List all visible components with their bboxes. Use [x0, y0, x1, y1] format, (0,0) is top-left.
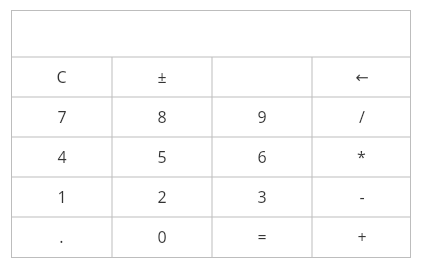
- button[interactable]: 7: [11, 97, 112, 137]
- button[interactable]: 5: [112, 137, 212, 177]
- button[interactable]: Equals: [212, 217, 312, 257]
- staticText: .: [59, 226, 64, 248]
- staticText: ←: [355, 68, 369, 87]
- staticText: +: [357, 226, 367, 248]
- staticText: 0: [157, 226, 167, 248]
- button[interactable]: 8: [112, 97, 212, 137]
- button[interactable]: 6: [212, 137, 312, 177]
- button[interactable]: Decimal point: [11, 217, 112, 257]
- button[interactable]: Plus minus: [112, 57, 212, 97]
- staticText: 1: [57, 186, 67, 208]
- button[interactable]: 4: [11, 137, 112, 177]
- staticText: -: [359, 186, 365, 208]
- button[interactable]: [212, 57, 312, 97]
- staticText: 5: [157, 146, 167, 168]
- button[interactable]: Divide: [312, 97, 411, 137]
- staticText: 6: [257, 146, 267, 168]
- staticText: 3: [257, 186, 267, 208]
- button[interactable]: 0: [112, 217, 212, 257]
- staticText: 9: [257, 106, 267, 128]
- button[interactable]: 3: [212, 177, 312, 217]
- staticText: 7: [57, 106, 67, 128]
- staticText: =: [257, 226, 267, 248]
- staticText: 2: [157, 186, 167, 208]
- button[interactable]: Clear: [11, 57, 112, 97]
- button[interactable]: Backspace: [312, 57, 411, 97]
- button[interactable]: Minus: [312, 177, 411, 217]
- button[interactable]: Multiply: [312, 137, 411, 177]
- button[interactable]: 2: [112, 177, 212, 217]
- button[interactable]: 9: [212, 97, 312, 137]
- staticText: 4: [57, 146, 67, 168]
- button[interactable]: 1: [11, 177, 112, 217]
- staticText: ±: [157, 66, 167, 88]
- button[interactable]: Plus: [312, 217, 411, 257]
- staticText: /: [359, 106, 365, 128]
- staticText: C: [56, 66, 67, 88]
- staticText: 8: [157, 106, 167, 128]
- staticText: *: [357, 146, 366, 168]
